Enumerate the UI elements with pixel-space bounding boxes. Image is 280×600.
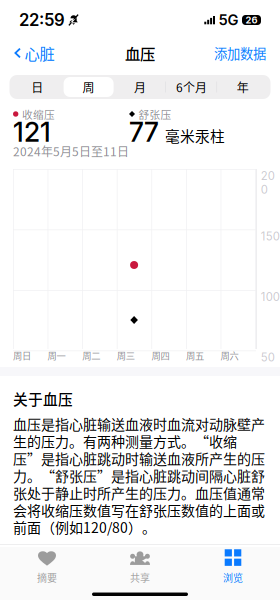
staticText: 77 xyxy=(129,116,159,148)
button[interactable]: 周 xyxy=(63,77,114,97)
staticText: 周日 xyxy=(13,349,31,362)
staticText: 周四 xyxy=(151,349,169,362)
button[interactable]: 摘要 xyxy=(0,544,93,584)
staticText: 共享 xyxy=(130,570,150,585)
staticText: 周一 xyxy=(48,349,66,362)
staticText: 6个月 xyxy=(176,78,207,96)
staticText: 26 xyxy=(245,14,257,26)
button[interactable]: 日 xyxy=(11,77,63,97)
staticText: 100 xyxy=(261,290,280,304)
staticText: 22:59 xyxy=(19,10,65,30)
button[interactable]: 心脏 xyxy=(5,41,63,65)
staticText: 周三 xyxy=(117,349,135,362)
staticText: 150 xyxy=(261,229,280,243)
staticText: 浏览 xyxy=(223,570,243,585)
button[interactable]: 添加数据 xyxy=(205,41,275,65)
staticText: 周 xyxy=(83,78,95,96)
staticText: 周五 xyxy=(186,349,204,362)
staticText: 心脏 xyxy=(24,42,54,64)
staticText: 2024年5月5日至11日 xyxy=(13,142,129,160)
staticText: 毫米汞柱 xyxy=(165,125,225,146)
staticText: 50 xyxy=(261,350,275,364)
staticText: 添加数据 xyxy=(214,43,266,63)
button[interactable]: 月 xyxy=(114,77,166,97)
staticText: 月 xyxy=(134,78,146,96)
staticText: 日 xyxy=(31,78,43,96)
staticText: 关于血压 xyxy=(13,388,73,409)
button[interactable]: 共享 xyxy=(93,544,186,584)
staticText: 周二 xyxy=(82,349,100,362)
staticText: 摘要 xyxy=(37,570,57,585)
staticText: 121 xyxy=(13,116,51,148)
staticText: 血压是指心脏输送血液时血流对动脉壁产生的压力。有两种测量方式。“收缩压”是指心脏… xyxy=(13,415,265,536)
staticText: 血压 xyxy=(125,42,155,64)
button[interactable]: 浏览 xyxy=(186,544,279,584)
staticText: 周六 xyxy=(221,349,239,362)
staticText: 舒张压 xyxy=(138,106,171,122)
button[interactable]: 年 xyxy=(217,77,268,97)
staticText: 年 xyxy=(237,78,249,96)
staticText: 200 xyxy=(261,169,275,196)
staticText: 5G xyxy=(218,11,238,29)
staticText: 收缩压 xyxy=(22,106,55,122)
button[interactable]: 6个月 xyxy=(166,77,217,97)
